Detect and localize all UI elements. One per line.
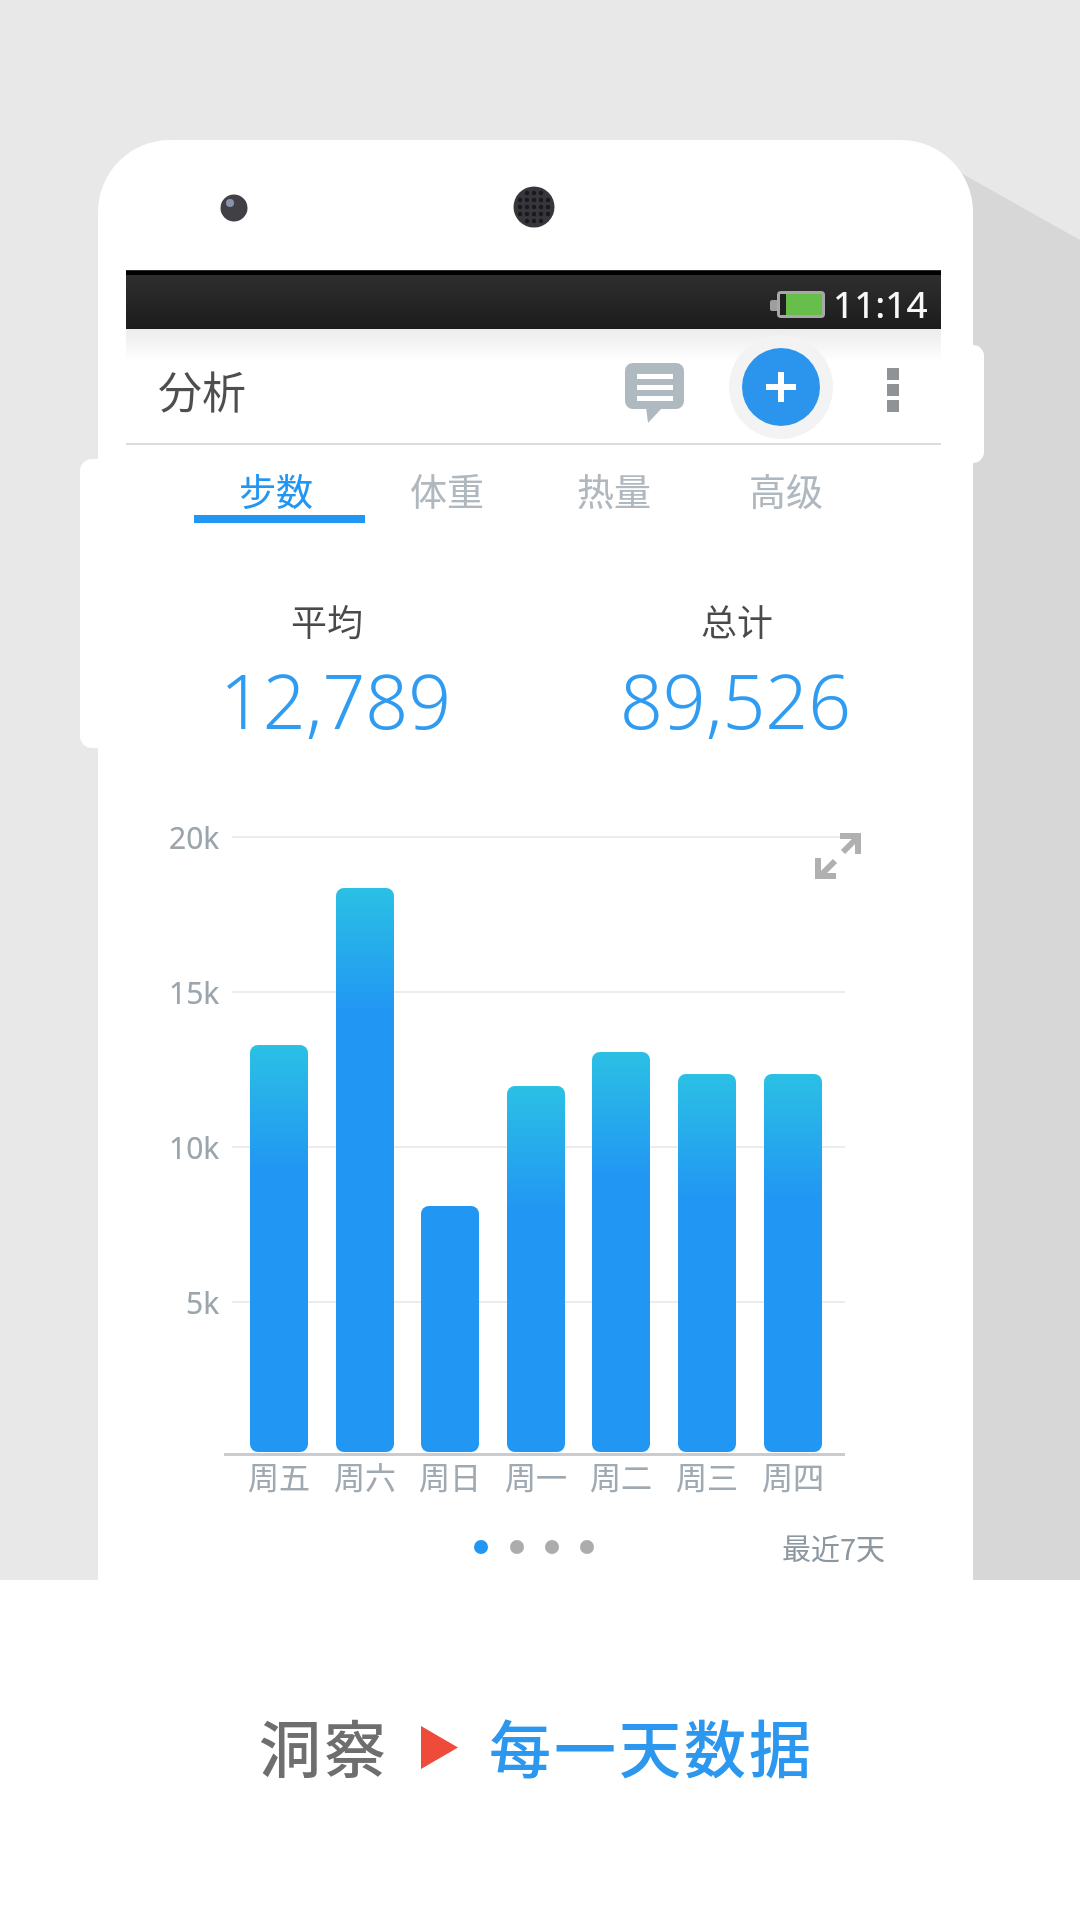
staticText: 20k	[169, 817, 220, 857]
staticText: 周一	[505, 1453, 567, 1495]
staticText: 15k	[169, 972, 220, 1012]
button[interactable]	[742, 348, 820, 426]
staticText: 周六	[334, 1453, 396, 1495]
staticText: 热量	[577, 463, 651, 517]
staticText: 每一天数据	[489, 1701, 815, 1791]
staticText: 洞察	[259, 1701, 390, 1791]
staticText: 12,789	[220, 649, 452, 749]
staticText: 10k	[169, 1127, 220, 1167]
button[interactable]: 热量	[529, 453, 699, 527]
staticText: 11:14	[833, 278, 928, 328]
button[interactable]: 高级	[701, 453, 871, 527]
staticText: 体重	[410, 463, 484, 517]
staticText: 周二	[590, 1453, 652, 1495]
button[interactable]	[863, 358, 923, 422]
staticText: 高级	[749, 463, 823, 517]
staticText: 5k	[186, 1282, 220, 1322]
button[interactable]	[615, 353, 695, 433]
staticText: 周四	[762, 1453, 824, 1495]
button[interactable]: 体重	[362, 453, 532, 527]
staticText: 总计	[701, 594, 774, 646]
staticText: 89,526	[620, 649, 852, 749]
staticText: 步数	[239, 463, 313, 517]
staticText: 分析	[158, 358, 246, 418]
staticText: 平均	[291, 594, 364, 646]
button[interactable]: 步数	[191, 453, 361, 527]
staticText: 周五	[248, 1453, 310, 1495]
staticText: 最近7天	[782, 1526, 886, 1568]
staticText: 周三	[676, 1453, 738, 1495]
staticText: 周日	[419, 1453, 481, 1495]
